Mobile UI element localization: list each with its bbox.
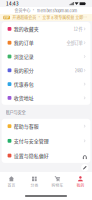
staticText: 全部订单 <box>67 40 83 46</box>
staticText: 分类 <box>30 182 38 188</box>
button[interactable]: 帮助与客服 <box>2 119 90 133</box>
button[interactable]: 支付与安全管理 <box>2 133 90 148</box>
staticText: 浏览记录 <box>14 53 34 60</box>
button[interactable]: 我的收藏夹 <box>2 22 90 36</box>
button[interactable]: 设置与隐私偏好 <box>2 148 90 163</box>
button[interactable]: 购物车 <box>46 172 69 192</box>
staticText: 账户与安全 <box>6 109 26 115</box>
button[interactable]: 浏览记录 <box>2 50 90 63</box>
staticText: 设置与隐私偏好 <box>14 152 49 159</box>
staticText: 开通超级会员 · 立享 8 项专属权益 立即开通 > <box>12 15 89 20</box>
staticText: 收货地址 <box>14 94 34 101</box>
staticText: VIP <box>4 15 9 20</box>
button[interactable]: 我的积分 <box>2 63 90 77</box>
staticText: 购物车 <box>51 182 63 188</box>
staticText: 14:43 <box>6 0 19 7</box>
button[interactable]: 分类 <box>23 172 46 192</box>
button[interactable]: 我的订单 <box>2 36 90 50</box>
button[interactable]: 首页 <box>0 172 23 192</box>
staticText: 会员中心 · member.shopmall.com <box>14 8 77 13</box>
staticText: 首页 <box>7 182 15 188</box>
staticText: 我的收藏夹 <box>14 25 39 32</box>
staticText: 帮助与客服 <box>14 123 39 130</box>
staticText: 我的积分 <box>14 67 34 74</box>
staticText: 2480 <box>75 67 83 73</box>
button[interactable]: 客服 <box>81 153 89 161</box>
staticText: 优惠券包 <box>14 80 34 88</box>
button[interactable]: 我的 <box>69 172 92 192</box>
staticText: 支付与安全管理 <box>14 137 49 144</box>
staticText: 我的 <box>76 182 84 188</box>
staticText: 我的订单 <box>14 39 34 46</box>
button[interactable]: 优惠券包 <box>2 77 90 91</box>
button[interactable]: VIP <box>0 14 92 21</box>
button[interactable]: 反馈 <box>81 164 89 171</box>
button[interactable]: 收货地址 <box>2 91 90 105</box>
staticText: 12 件 <box>74 26 83 32</box>
